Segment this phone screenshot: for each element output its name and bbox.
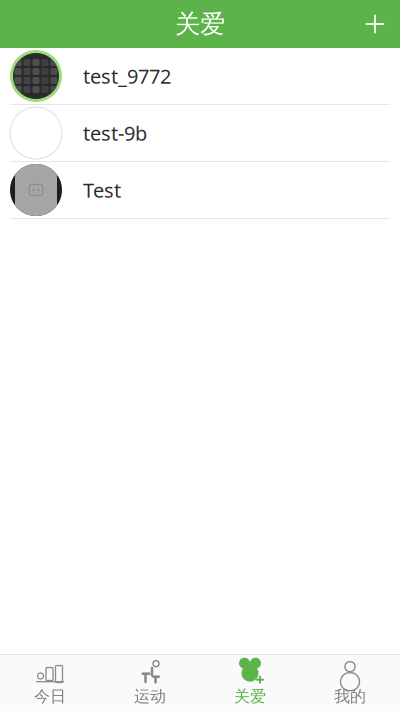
staticText: 我的 bbox=[334, 687, 366, 706]
staticText: 关爱 bbox=[234, 687, 266, 706]
button[interactable]: 我的 bbox=[300, 655, 400, 711]
button[interactable]: test-9b bbox=[0, 105, 400, 162]
staticText: 运动 bbox=[134, 687, 166, 706]
staticText: 关爱 bbox=[175, 8, 225, 39]
button[interactable]: 运动 bbox=[100, 655, 200, 711]
button[interactable]: 今日 bbox=[0, 655, 100, 711]
staticText: test_9772 bbox=[83, 63, 171, 89]
staticText: Test bbox=[83, 177, 121, 203]
button[interactable]: test_9772 bbox=[0, 48, 400, 105]
button[interactable]: Test bbox=[0, 162, 400, 219]
staticText: 今日 bbox=[34, 687, 66, 706]
button[interactable]: 关爱 bbox=[200, 655, 300, 711]
button[interactable]: Add bbox=[350, 0, 400, 48]
staticText: test-9b bbox=[83, 120, 147, 146]
